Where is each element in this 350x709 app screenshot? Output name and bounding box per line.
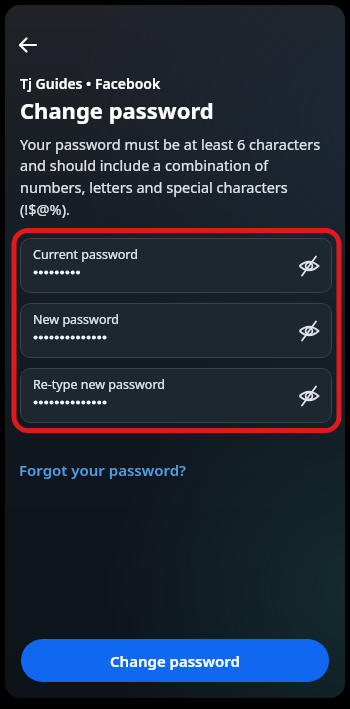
- staticText: Re-type new password: [33, 376, 165, 393]
- button[interactable]: Current password: [20, 238, 332, 293]
- staticText: Forgot your password?: [19, 460, 186, 480]
- button[interactable]: Re-type new password: [20, 368, 332, 423]
- button[interactable]: Forgot your password?: [19, 460, 186, 480]
- staticText: Change password: [20, 95, 214, 125]
- staticText: Your password must be at least 6 charact…: [20, 134, 321, 219]
- staticText: New password: [33, 311, 120, 328]
- button[interactable]: Change password: [21, 639, 329, 682]
- button[interactable]: New password: [20, 303, 332, 358]
- button[interactable]: [13, 31, 43, 59]
- staticText: Current password: [33, 246, 138, 263]
- staticText: Tj Guides • Facebook: [20, 74, 161, 93]
- staticText: Change password: [110, 651, 240, 671]
